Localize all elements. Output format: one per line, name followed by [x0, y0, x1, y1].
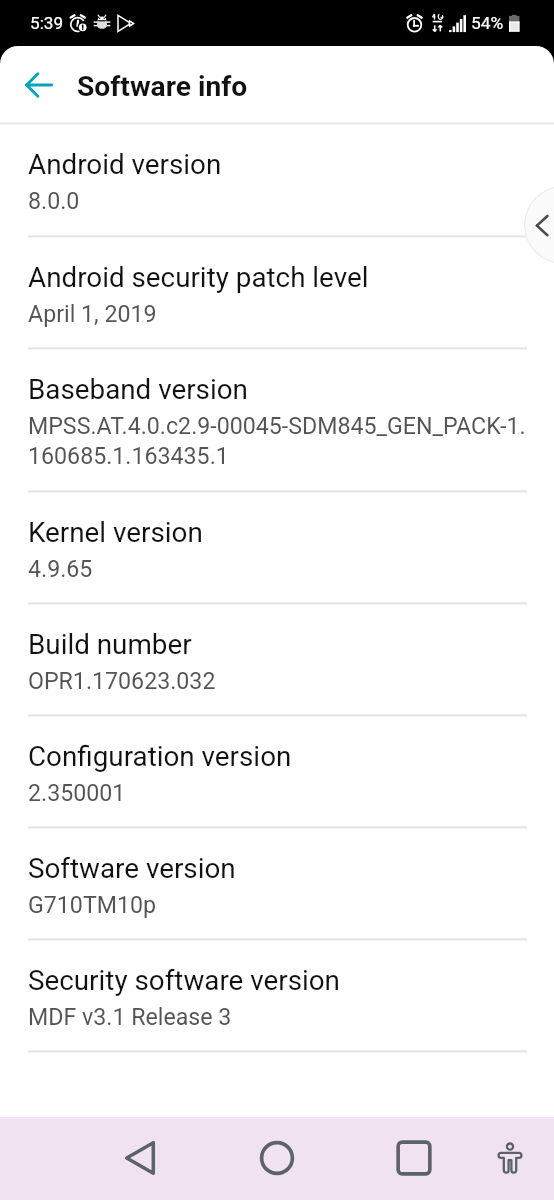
button[interactable]: Home [247, 1128, 307, 1188]
button[interactable]: Back [110, 1128, 170, 1188]
staticText: 2.350001 [28, 779, 126, 806]
button[interactable]: Configuration version [0, 716, 554, 827]
staticText: Software info [77, 70, 248, 103]
staticText: April 1, 2019 [28, 300, 157, 327]
staticText: Baseband version [28, 373, 248, 406]
button[interactable]: Navigate up [12, 59, 64, 111]
button[interactable]: Recent apps [384, 1128, 444, 1188]
staticText: 54% [471, 13, 504, 33]
staticText: 8.0.0 [28, 187, 80, 214]
staticText: Security software version [28, 964, 340, 997]
staticText: Build number [28, 628, 192, 661]
button[interactable]: Build number [0, 604, 554, 715]
staticText: G710TM10p [28, 891, 157, 918]
staticText: Kernel version [28, 516, 203, 549]
staticText: 4.9.65 [28, 555, 93, 582]
button[interactable]: Edge panel handle [524, 186, 554, 264]
button[interactable]: Kernel version [0, 492, 554, 603]
staticText: 160685.1.163435.1 [28, 442, 229, 469]
button[interactable]: Software version [0, 828, 554, 939]
staticText: Android version [28, 148, 222, 181]
staticText: 5:39 [30, 13, 64, 33]
staticText: Android security patch level [28, 261, 369, 294]
button[interactable]: Accessibility [480, 1128, 540, 1188]
button[interactable]: Baseband version [0, 349, 554, 491]
staticText: Software version [28, 852, 236, 885]
staticText: MPSS.AT.4.0.c2.9-00045-SDM845_GEN_PACK-1… [28, 412, 526, 439]
button[interactable]: Android version [0, 124, 554, 236]
staticText: Configuration version [28, 740, 292, 773]
button[interactable]: Security software version [0, 940, 554, 1051]
button[interactable]: Android security patch level [0, 237, 554, 348]
staticText: MDF v3.1 Release 3 [28, 1003, 232, 1030]
staticText: OPR1.170623.032 [28, 667, 216, 694]
